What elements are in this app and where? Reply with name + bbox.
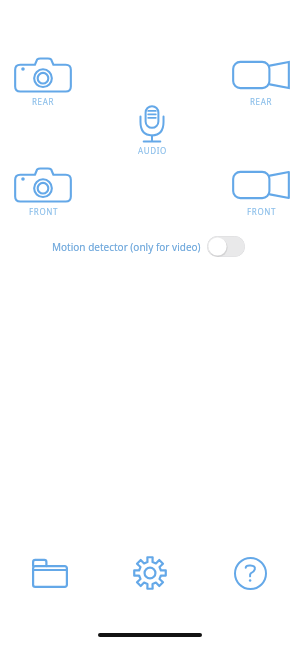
staticText: FRONT xyxy=(29,206,58,217)
button[interactable]: FRONT xyxy=(230,166,292,218)
button[interactable]: Motion detector (only for video) xyxy=(50,234,247,259)
staticText: REAR xyxy=(250,96,272,107)
button[interactable]: AUDIO xyxy=(134,104,170,157)
button[interactable]: REAR xyxy=(12,56,74,108)
staticText: FRONT xyxy=(247,206,276,217)
button[interactable]: REAR xyxy=(230,56,292,108)
button[interactable]: Settings xyxy=(100,556,200,590)
button[interactable]: Files xyxy=(0,558,100,588)
staticText: REAR xyxy=(32,96,54,107)
staticText: Motion detector (only for video) xyxy=(52,240,201,254)
staticText: AUDIO xyxy=(138,145,167,156)
button[interactable]: FRONT xyxy=(12,166,74,218)
button[interactable]: Help xyxy=(200,557,300,590)
